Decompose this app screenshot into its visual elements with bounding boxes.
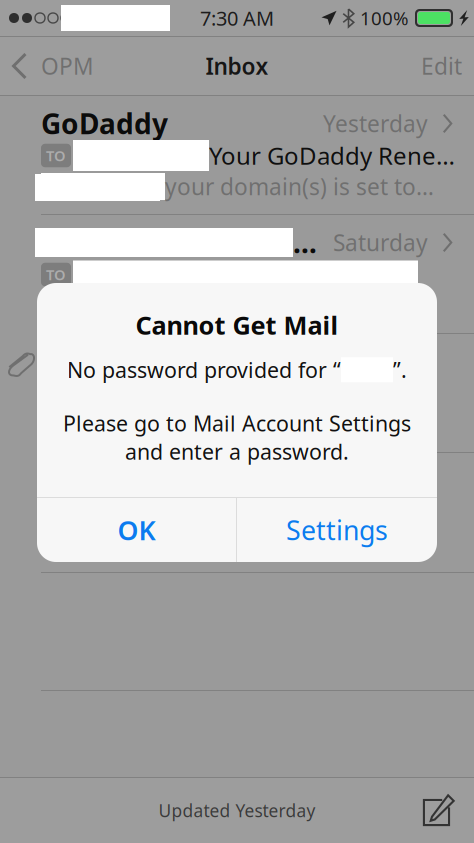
button[interactable]: OK bbox=[37, 498, 236, 562]
staticText: No password provided for “ bbox=[67, 356, 341, 384]
staticText: TO bbox=[46, 265, 66, 284]
staticText: 7:30 AM bbox=[200, 5, 274, 31]
staticText: Edit bbox=[421, 51, 462, 81]
button[interactable]: OPM bbox=[0, 42, 94, 90]
staticText: and enter a password. bbox=[125, 437, 349, 466]
staticText: TO bbox=[46, 146, 66, 165]
staticText: OPM bbox=[41, 51, 94, 81]
button[interactable]: … bbox=[0, 215, 474, 333]
button[interactable]: Settings bbox=[237, 498, 437, 562]
staticText: OK bbox=[117, 512, 155, 548]
staticText: ”. bbox=[393, 356, 407, 384]
button[interactable]: GoDaddy bbox=[0, 96, 474, 214]
button[interactable] bbox=[0, 453, 474, 572]
staticText: Settings bbox=[286, 512, 388, 548]
staticText: GoDaddy bbox=[41, 105, 168, 142]
staticText: Updated Yesterday bbox=[158, 799, 315, 822]
staticText: Cannot Get Mail bbox=[135, 308, 338, 342]
staticText: Inbox bbox=[205, 51, 268, 81]
staticText: Please go to Mail Account Settings bbox=[63, 409, 411, 437]
staticText: Yesterday bbox=[323, 108, 428, 138]
staticText: your domain(s) is set to… bbox=[165, 171, 434, 201]
staticText: 100% bbox=[360, 6, 409, 30]
button[interactable]: Edit bbox=[421, 42, 474, 90]
staticText: Saturday bbox=[333, 227, 428, 257]
button[interactable] bbox=[0, 334, 474, 452]
button[interactable]: Compose bbox=[405, 779, 474, 842]
staticText: Your GoDaddy Rene… bbox=[209, 140, 455, 171]
staticText: … bbox=[293, 224, 317, 261]
